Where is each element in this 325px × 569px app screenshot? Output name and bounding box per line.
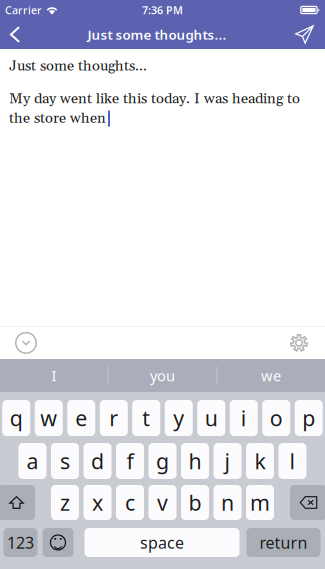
button[interactable]: l [278,443,306,479]
staticText: c [125,488,135,517]
button[interactable]: a [18,443,46,479]
staticText: you [150,366,175,385]
staticText: Carrier [5,3,42,17]
button[interactable]: Settings [283,327,315,359]
staticText: l [289,447,295,475]
button[interactable]: h [181,443,209,479]
button[interactable]: m [246,485,274,520]
staticText: p [302,404,315,432]
staticText: q [10,404,23,432]
staticText: u [205,404,218,432]
staticText: e [75,404,87,432]
staticText: Just some thoughts... [87,26,226,43]
button[interactable]: Hide keyboard [10,327,42,359]
staticText: i [241,404,247,432]
button[interactable]: i [230,400,258,436]
button[interactable]: k [246,443,274,479]
button[interactable]: u [197,400,225,436]
button[interactable]: Delete [290,485,325,520]
button[interactable]: b [181,485,209,520]
staticText: r [109,404,118,432]
staticText: space [140,532,184,553]
button[interactable]: Emoji keyboard [42,528,73,557]
staticText: y [173,404,184,432]
button[interactable]: Send [284,20,325,49]
staticText: o [270,404,283,432]
button[interactable]: y [165,400,193,436]
staticText: w [40,404,57,432]
staticText: m [250,488,270,517]
staticText: z [60,488,70,517]
staticText: j [224,447,230,475]
button[interactable]: we [217,359,325,392]
button[interactable]: n [213,485,241,520]
button[interactable]: d [83,443,111,479]
staticText: k [254,447,265,475]
staticText: a [26,447,38,475]
button[interactable]: return [246,528,320,557]
staticText: n [221,488,234,517]
staticText: the store when [9,109,106,128]
button[interactable]: Back [0,20,30,49]
staticText: v [157,488,168,517]
button[interactable]: t [132,400,160,436]
staticText: 123 [7,532,34,553]
button[interactable]: x [83,485,111,520]
staticText: 7:36 PM [142,3,183,17]
button[interactable]: g [148,443,176,479]
staticText: I [51,366,56,385]
staticText: g [156,447,169,475]
staticText: return [259,532,307,553]
staticText: h [188,447,201,475]
button[interactable]: I [0,359,108,392]
button[interactable]: Shift [0,485,35,520]
button[interactable]: v [148,485,176,520]
staticText: f [126,447,133,475]
button[interactable]: f [116,443,144,479]
staticText: b [188,488,201,517]
button[interactable]: w [35,400,63,436]
staticText: t [142,404,150,432]
button[interactable]: q [2,400,30,436]
staticText: s [60,447,70,475]
button[interactable]: o [262,400,290,436]
button[interactable]: s [51,443,79,479]
button[interactable]: j [213,443,241,479]
button[interactable]: 123 [3,528,37,557]
button[interactable]: z [51,485,79,520]
staticText: we [261,366,281,385]
button[interactable]: you [109,359,216,392]
staticText: x [92,488,103,517]
staticText: d [91,447,104,475]
button[interactable]: space [84,528,239,557]
staticText: My day went like this today. I was headi… [9,90,300,108]
button[interactable]: p [295,400,323,436]
button[interactable]: c [116,485,144,520]
button[interactable]: r [100,400,128,436]
staticText: Just some thoughts... [9,57,147,76]
button[interactable]: e [67,400,95,436]
